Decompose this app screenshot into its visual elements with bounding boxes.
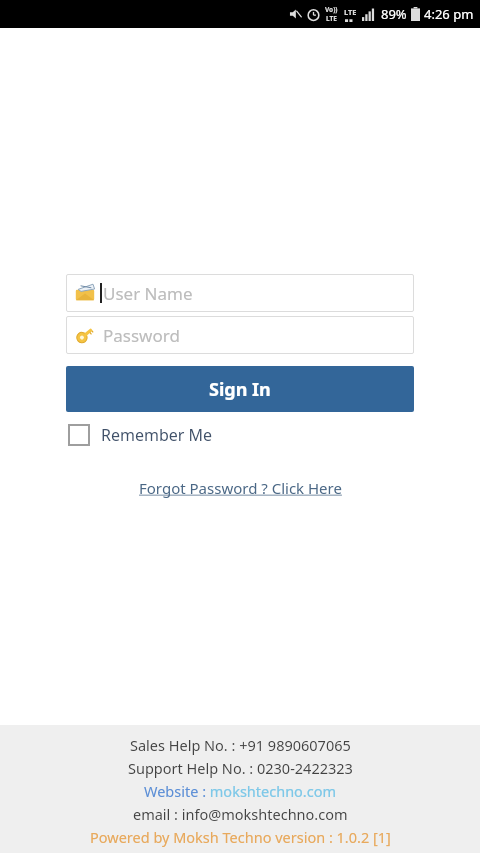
staticText: Vo)) <box>325 5 338 14</box>
staticText: Support Help No. : 0230-2422323 <box>128 758 353 778</box>
staticText: Powered by Moksh Techno version : 1.0.2 … <box>90 827 391 847</box>
button[interactable]: Remember Me <box>66 421 215 449</box>
staticText: LTE <box>344 7 357 17</box>
button[interactable]: User Name <box>66 274 414 312</box>
staticText: Password <box>103 324 180 347</box>
staticText: 4:26 pm <box>424 5 474 23</box>
button[interactable]: Password <box>66 316 414 354</box>
staticText: Sign In <box>209 377 271 402</box>
staticText: Sales Help No. : +91 9890607065 <box>130 735 351 755</box>
button[interactable]: Website : mokshtechno.com <box>144 781 337 801</box>
button[interactable]: Sign In <box>66 366 414 412</box>
staticText: 89% <box>381 5 407 23</box>
staticText: User Name <box>103 282 193 305</box>
button[interactable]: Forgot Password ? Click Here <box>133 475 348 501</box>
staticText: LTE <box>326 14 337 23</box>
staticText: Remember Me <box>101 424 213 446</box>
button[interactable]: email : info@mokshtechno.com <box>133 804 348 824</box>
